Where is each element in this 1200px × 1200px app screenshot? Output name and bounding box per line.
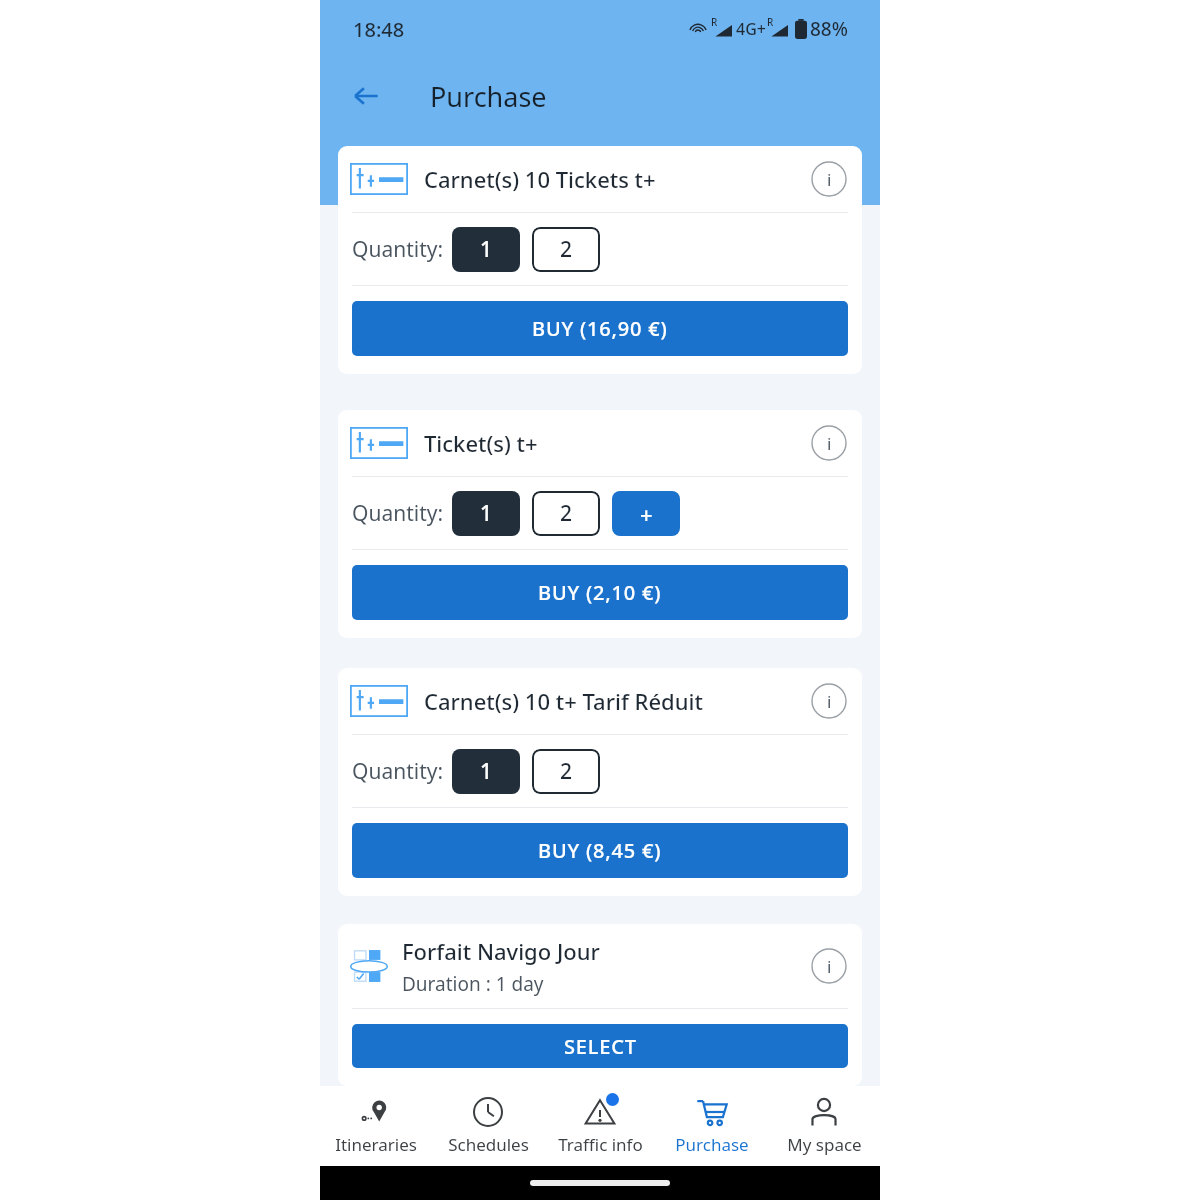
staticText: Itineraries <box>335 1133 417 1156</box>
staticText: i <box>827 432 832 455</box>
button[interactable]: Traffic info <box>544 1086 656 1166</box>
staticText: Schedules <box>448 1133 529 1156</box>
button[interactable]: 2 <box>532 749 600 794</box>
staticText: Ticket(s) t+ <box>424 428 538 458</box>
staticText: My space <box>787 1133 862 1156</box>
button[interactable]: Purchase <box>656 1086 768 1166</box>
button[interactable]: Add quantity <box>612 491 680 536</box>
staticText: Duration : 1 day <box>402 971 544 997</box>
button[interactable]: 1 <box>452 749 520 794</box>
staticText: Purchase <box>675 1133 749 1156</box>
button[interactable]: 2 <box>532 491 600 536</box>
staticText: i <box>827 168 832 191</box>
staticText: 1 <box>480 499 493 528</box>
staticText: i <box>827 690 832 713</box>
button[interactable]: 1 <box>452 491 520 536</box>
button[interactable]: BUY (2,10 €) <box>352 565 848 620</box>
button[interactable]: Information <box>808 680 850 722</box>
staticText: 88% <box>810 16 848 42</box>
staticText: Quantity: <box>352 235 444 264</box>
button[interactable]: SELECT <box>352 1024 848 1068</box>
staticText: Traffic info <box>558 1133 643 1156</box>
button[interactable]: 1 <box>452 227 520 272</box>
staticText: BUY (16,90 €) <box>532 315 668 342</box>
staticText: R <box>711 15 718 29</box>
staticText: 2 <box>560 757 573 786</box>
staticText: 2 <box>560 235 573 264</box>
button[interactable]: Information <box>808 945 850 987</box>
button[interactable]: Information <box>808 158 850 200</box>
button[interactable]: Information <box>808 422 850 464</box>
staticText: + <box>640 499 653 529</box>
staticText: i <box>827 955 832 978</box>
staticText: 1 <box>480 235 493 264</box>
staticText: 4G+ <box>736 18 766 40</box>
button[interactable]: Schedules <box>432 1086 544 1166</box>
staticText: 18:48 <box>353 16 405 43</box>
staticText: Quantity: <box>352 499 444 528</box>
button[interactable]: Itineraries <box>320 1086 432 1166</box>
staticText: SELECT <box>564 1033 637 1060</box>
button[interactable]: 2 <box>532 227 600 272</box>
staticText: Purchase <box>430 78 547 115</box>
staticText: 2 <box>560 499 573 528</box>
staticText: BUY (8,45 €) <box>538 837 662 864</box>
button[interactable]: My space <box>768 1086 880 1166</box>
button[interactable]: BUY (16,90 €) <box>352 301 848 356</box>
button[interactable]: BUY (8,45 €) <box>352 823 848 878</box>
staticText: R <box>767 15 774 29</box>
staticText: Quantity: <box>352 757 444 786</box>
button[interactable]: Back <box>342 72 390 120</box>
staticText: Forfait Navigo Jour <box>402 936 600 966</box>
staticText: Carnet(s) 10 Tickets t+ <box>424 164 656 194</box>
staticText: 1 <box>480 757 493 786</box>
staticText: BUY (2,10 €) <box>538 579 662 606</box>
staticText: Carnet(s) 10 t+ Tarif Réduit <box>424 686 703 716</box>
